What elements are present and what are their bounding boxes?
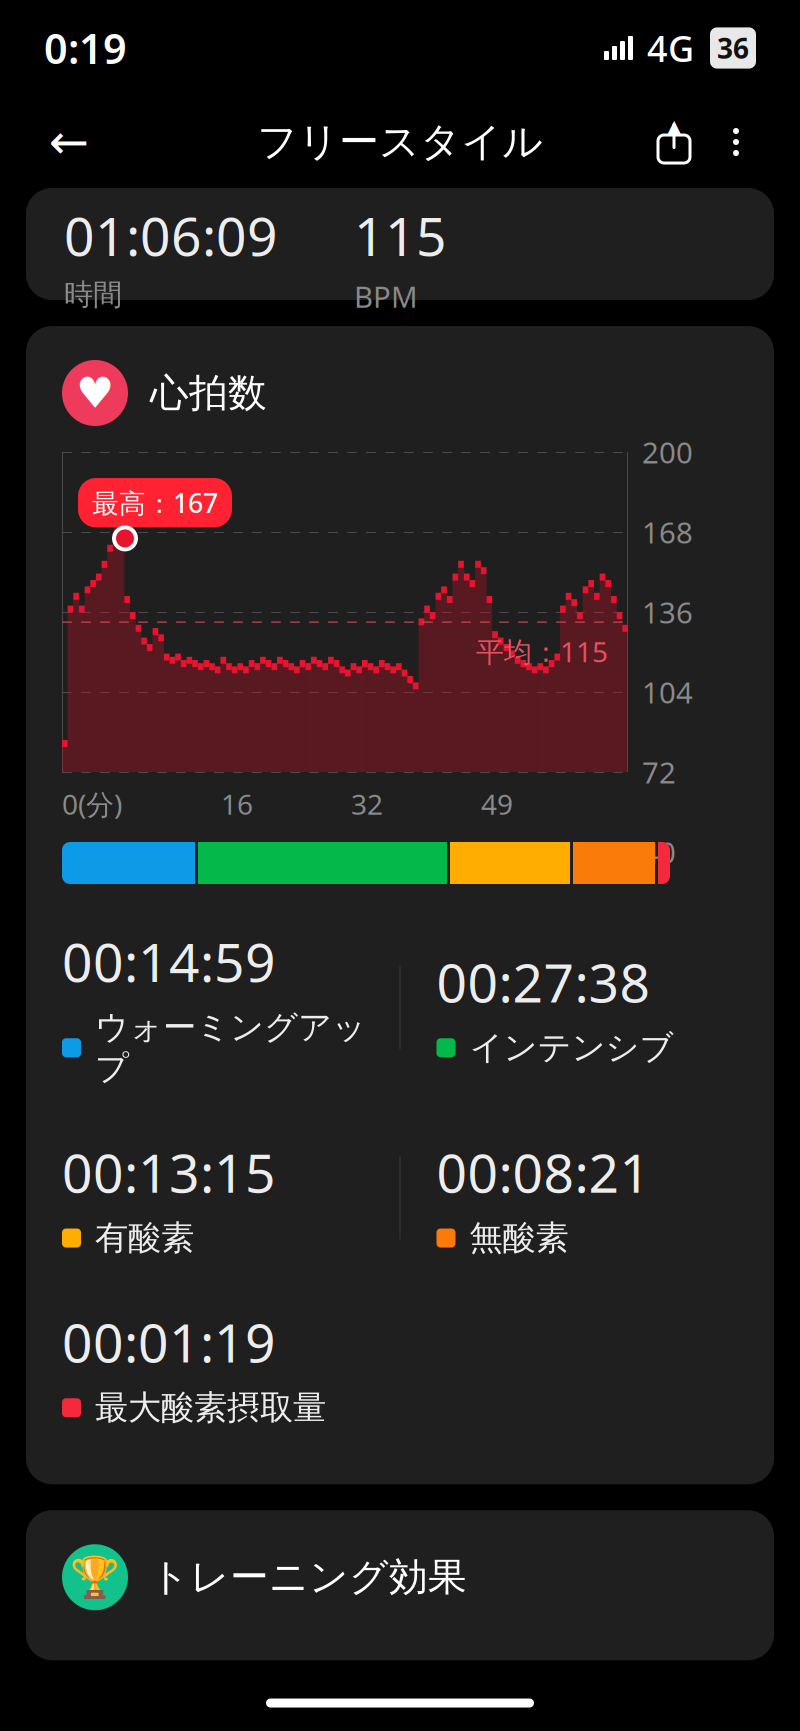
staticText: ▲ [667, 116, 680, 136]
staticText: トレーニング効果 [150, 1553, 467, 1601]
staticText: 🏆 [70, 1554, 120, 1600]
staticText: 01:06:09 [64, 200, 278, 271]
button[interactable]: Back [34, 107, 104, 177]
staticText: 最高：167 [92, 485, 218, 520]
staticText: ← [49, 115, 89, 169]
staticText: フリースタイル [257, 117, 543, 166]
staticText: 00:01:19 [62, 1306, 276, 1377]
staticText: BPM [354, 277, 418, 316]
staticText: インテンシブ [469, 1027, 673, 1068]
staticText: 4G [647, 24, 694, 72]
button[interactable]: 🏆 [26, 1510, 774, 1660]
staticText: 40 [642, 832, 676, 871]
staticText: 平均：115 [476, 633, 608, 670]
staticText: 0:19 [44, 21, 127, 75]
staticText: 32 [351, 785, 383, 823]
staticText: 115 [354, 200, 447, 271]
staticText: 72 [642, 752, 676, 791]
button[interactable]: More options [706, 110, 766, 174]
staticText: 136 [642, 592, 693, 631]
staticText: 36 [717, 29, 749, 67]
staticText: 168 [642, 512, 693, 551]
staticText: 有酸素 [95, 1217, 194, 1258]
staticText: ウォーミングアップ [95, 1007, 366, 1089]
staticText: 200 [642, 432, 693, 471]
staticText: 心拍数 [150, 369, 267, 417]
staticText: 16 [221, 785, 253, 823]
staticText: 00:14:59 [62, 926, 276, 997]
staticText: 49 [481, 785, 513, 823]
staticText: 104 [642, 672, 693, 711]
staticText: ♥ [76, 369, 114, 417]
button[interactable]: Share [642, 110, 706, 174]
staticText: 00:27:38 [436, 946, 650, 1017]
staticText: 時間 [64, 277, 122, 313]
staticText: 無酸素 [469, 1217, 568, 1258]
staticText: 00:08:21 [436, 1137, 650, 1207]
staticText: 最大酸素摂取量 [95, 1387, 326, 1428]
staticText: 00:13:15 [62, 1137, 276, 1207]
staticText: 0(分) [62, 785, 122, 823]
